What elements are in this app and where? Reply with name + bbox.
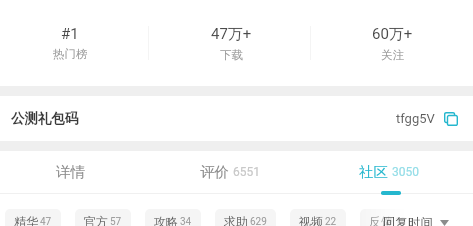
staticText: 629 <box>250 216 267 226</box>
staticText: 攻略 <box>154 214 178 226</box>
button[interactable]: Copy gift code <box>444 112 458 126</box>
staticText: 公测礼包码 <box>11 110 79 127</box>
staticText: 社区 <box>359 163 388 181</box>
button[interactable]: 47万+ <box>151 0 312 86</box>
button[interactable]: 攻略 <box>145 209 201 226</box>
staticText: 求助 <box>224 214 248 226</box>
staticText: 评价 <box>200 163 229 181</box>
staticText: tfgg5V <box>396 111 435 126</box>
staticText: 关注 <box>381 48 404 62</box>
staticText: 22 <box>325 216 337 226</box>
staticText: 视频 <box>299 214 323 226</box>
staticText: 精华 <box>14 214 38 226</box>
staticText: 3050 <box>392 165 419 179</box>
button[interactable]: 视频 <box>290 209 346 226</box>
button[interactable]: 反馈 <box>360 209 416 226</box>
staticText: 34 <box>180 216 192 226</box>
button[interactable]: 社区 <box>309 151 468 193</box>
staticText: 反馈 <box>369 214 393 226</box>
button[interactable]: 60万+ <box>312 0 473 86</box>
button[interactable]: 回复时间 <box>357 209 473 226</box>
button[interactable]: 评价 <box>150 151 309 193</box>
staticText: 下载 <box>220 48 243 62</box>
staticText: 热门榜 <box>53 47 88 61</box>
staticText: 57 <box>110 216 122 226</box>
staticText: 60万+ <box>372 25 413 44</box>
staticText: 47万+ <box>211 25 252 44</box>
staticText: 6551 <box>233 165 260 179</box>
staticText: #1 <box>61 25 79 43</box>
staticText: 47 <box>40 216 52 226</box>
button[interactable]: 官方 <box>75 209 131 226</box>
staticText: 回复时间 <box>383 215 433 226</box>
staticText: 官方 <box>84 214 108 226</box>
staticText: 12 <box>395 216 407 226</box>
button[interactable]: 公测礼包码 <box>0 96 473 141</box>
button[interactable]: #1 <box>0 0 151 86</box>
button[interactable]: 详情 <box>0 151 150 193</box>
button[interactable]: 精华 <box>5 209 61 226</box>
button[interactable]: 求助 <box>215 209 276 226</box>
staticText: 详情 <box>56 163 85 181</box>
